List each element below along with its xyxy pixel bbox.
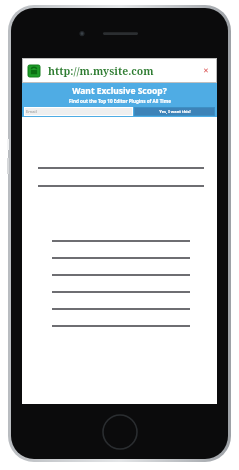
other: Secure connection bbox=[28, 65, 40, 77]
button[interactable]: Secure connection bbox=[22, 58, 217, 83]
staticText: Want Exclusive Scoop? bbox=[72, 85, 167, 97]
button[interactable]: Email bbox=[24, 107, 133, 116]
staticText: Email bbox=[26, 109, 37, 115]
staticText: Find out the Top 10 Editor Plugins of Al… bbox=[69, 98, 171, 104]
staticText: Yes, I want this! bbox=[159, 109, 191, 114]
staticText: http://m.mysite.com bbox=[48, 64, 154, 78]
staticText: ✕ bbox=[203, 67, 209, 75]
button[interactable]: Yes, I want this! bbox=[134, 107, 215, 116]
button[interactable]: Close bbox=[201, 66, 211, 76]
